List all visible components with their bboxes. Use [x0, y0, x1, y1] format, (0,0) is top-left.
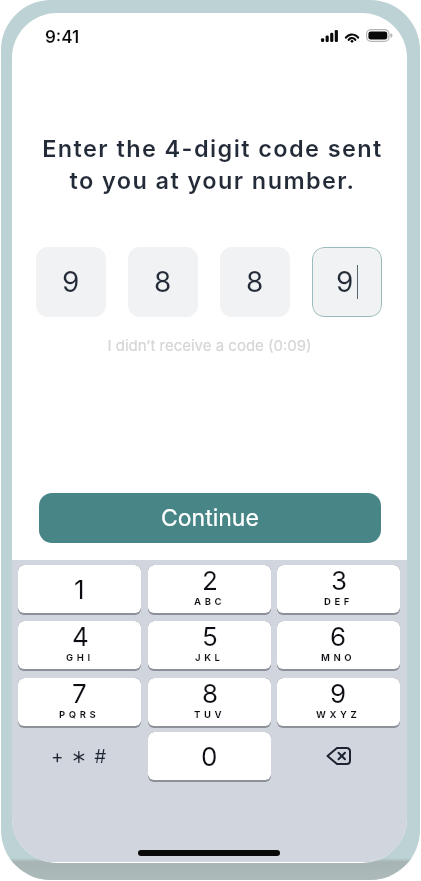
staticText: 1 [74, 574, 85, 605]
staticText: MNO [321, 652, 356, 663]
button[interactable]: 5 [148, 621, 271, 669]
staticText: PQRS [59, 709, 100, 720]
button[interactable]: 6 [277, 621, 400, 669]
staticText: 2 [202, 565, 218, 596]
staticText: 9 [62, 265, 80, 299]
staticText: DEF [324, 596, 354, 607]
staticText: 6 [330, 621, 347, 652]
staticText: ABC [194, 596, 226, 607]
button[interactable]: 3 [277, 565, 400, 613]
staticText: WXYZ [316, 709, 361, 720]
staticText: 8 [202, 678, 219, 709]
button[interactable]: 0 [148, 732, 271, 780]
button[interactable]: Symbols [18, 732, 141, 780]
staticText: + ∗ # [51, 745, 108, 768]
button[interactable]: 9 [277, 678, 400, 726]
staticText: 9 [336, 265, 354, 299]
button[interactable]: 9 [312, 247, 382, 317]
staticText: GHI [66, 652, 94, 663]
staticText: Enter the 4-digit code sent to you at yo… [15, 134, 407, 195]
staticText: 0 [201, 741, 218, 772]
button[interactable]: 4 [18, 621, 141, 669]
button[interactable]: 7 [18, 678, 141, 726]
button[interactable]: 1 [18, 565, 141, 613]
staticText: Continue [161, 504, 259, 532]
button[interactable]: 8 [220, 247, 290, 317]
button[interactable]: Backspace [277, 732, 400, 780]
staticText: I didn’t receive a code (0:09) [12, 336, 407, 354]
staticText: 8 [154, 265, 172, 299]
staticText: 8 [246, 265, 264, 299]
staticText: 3 [331, 565, 348, 596]
button[interactable]: 2 [148, 565, 271, 613]
staticText: 9:41 [45, 27, 80, 48]
button[interactable]: 9 [36, 247, 106, 317]
button[interactable]: 8 [128, 247, 198, 317]
staticText: 7 [72, 678, 87, 709]
staticText: JKL [195, 652, 224, 663]
staticText: TUV [194, 709, 226, 720]
staticText: 4 [72, 621, 89, 652]
staticText: 5 [202, 621, 218, 652]
button[interactable]: Continue [39, 493, 381, 543]
button[interactable]: 8 [148, 678, 271, 726]
staticText: 9 [330, 678, 347, 709]
